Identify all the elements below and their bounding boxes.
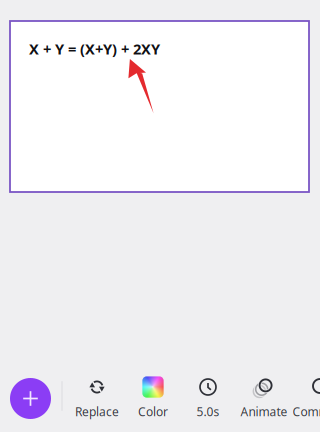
button[interactable]: Comment bbox=[292, 378, 320, 418]
staticText: 5.0s bbox=[196, 403, 219, 419]
staticText: Comment bbox=[292, 403, 320, 419]
button[interactable]: Replace bbox=[69, 378, 125, 418]
staticText: Animate bbox=[240, 403, 287, 419]
button[interactable]: Color bbox=[125, 378, 181, 418]
button[interactable]: Add bbox=[7, 375, 53, 421]
staticText: Replace bbox=[75, 403, 119, 419]
button[interactable]: Animate bbox=[236, 378, 292, 418]
staticText: X + Y = (X+Y) + 2XY bbox=[29, 39, 160, 58]
button[interactable]: 5.0s bbox=[180, 378, 236, 418]
staticText: Color bbox=[138, 403, 168, 419]
